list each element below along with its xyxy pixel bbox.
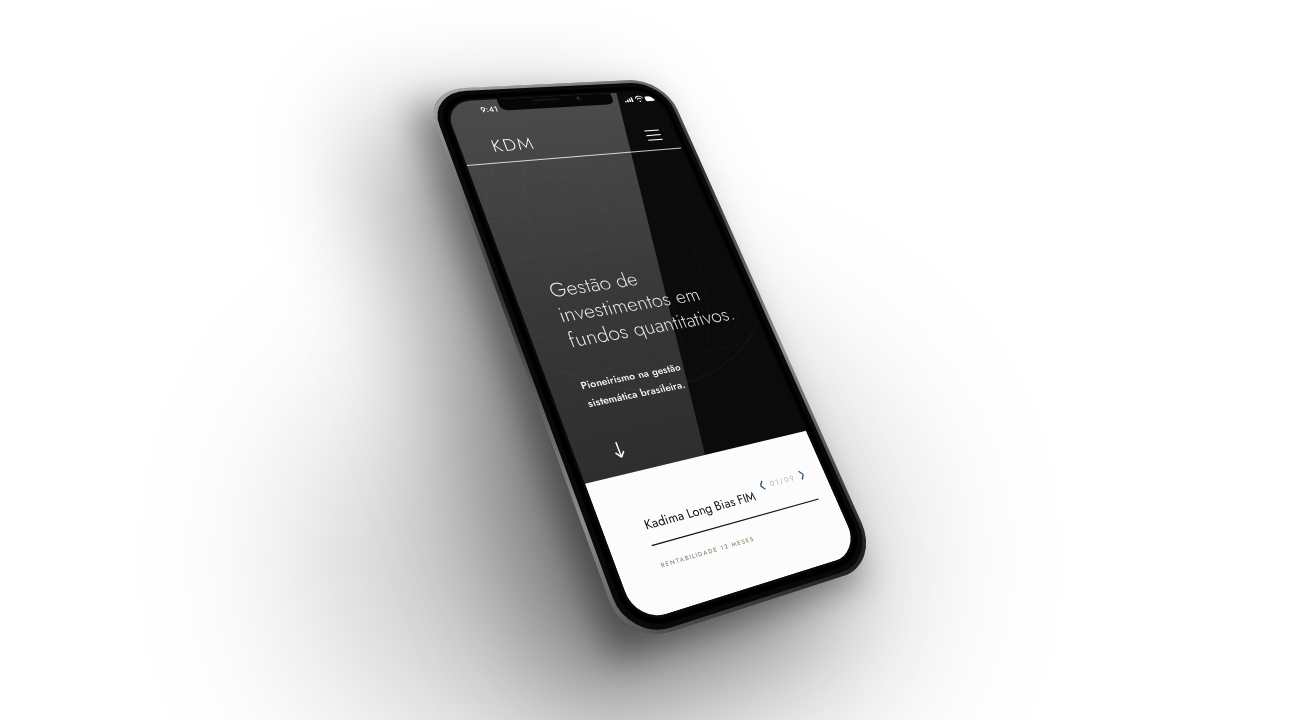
other: KDM investment app home screen on a phon… [0, 0, 1300, 720]
button[interactable] [0, 0, 1300, 720]
